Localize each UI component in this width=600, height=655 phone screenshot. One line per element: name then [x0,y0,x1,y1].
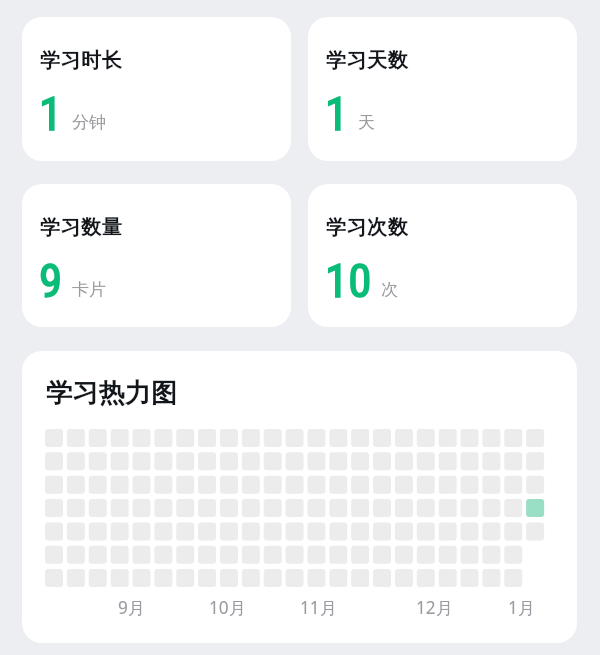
staticText: 学习数量 [40,215,123,240]
staticText: 10 [325,253,372,308]
button[interactable]: 学习时长 [22,17,291,161]
button[interactable]: 学习天数 [308,17,577,161]
staticText: 天 [358,112,375,133]
staticText: 11月 [300,596,337,619]
staticText: 分钟 [72,112,106,133]
button[interactable]: 学习次数 [308,184,577,327]
staticText: 学习热力图 [46,377,177,410]
staticText: 学习次数 [326,215,409,240]
staticText: 次 [381,279,398,300]
button[interactable]: 学习热力图 [22,351,577,643]
staticText: 1 [325,86,349,141]
staticText: 9月 [118,596,146,619]
staticText: 学习时长 [40,48,123,73]
staticText: 10月 [209,596,246,619]
staticText: 12月 [416,596,453,619]
staticText: 卡片 [72,279,106,300]
staticText: 1月 [508,596,536,619]
button[interactable]: 学习数量 [22,184,291,327]
staticText: 学习天数 [326,48,409,73]
staticText: 1 [39,86,63,141]
staticText: 9 [39,253,63,308]
